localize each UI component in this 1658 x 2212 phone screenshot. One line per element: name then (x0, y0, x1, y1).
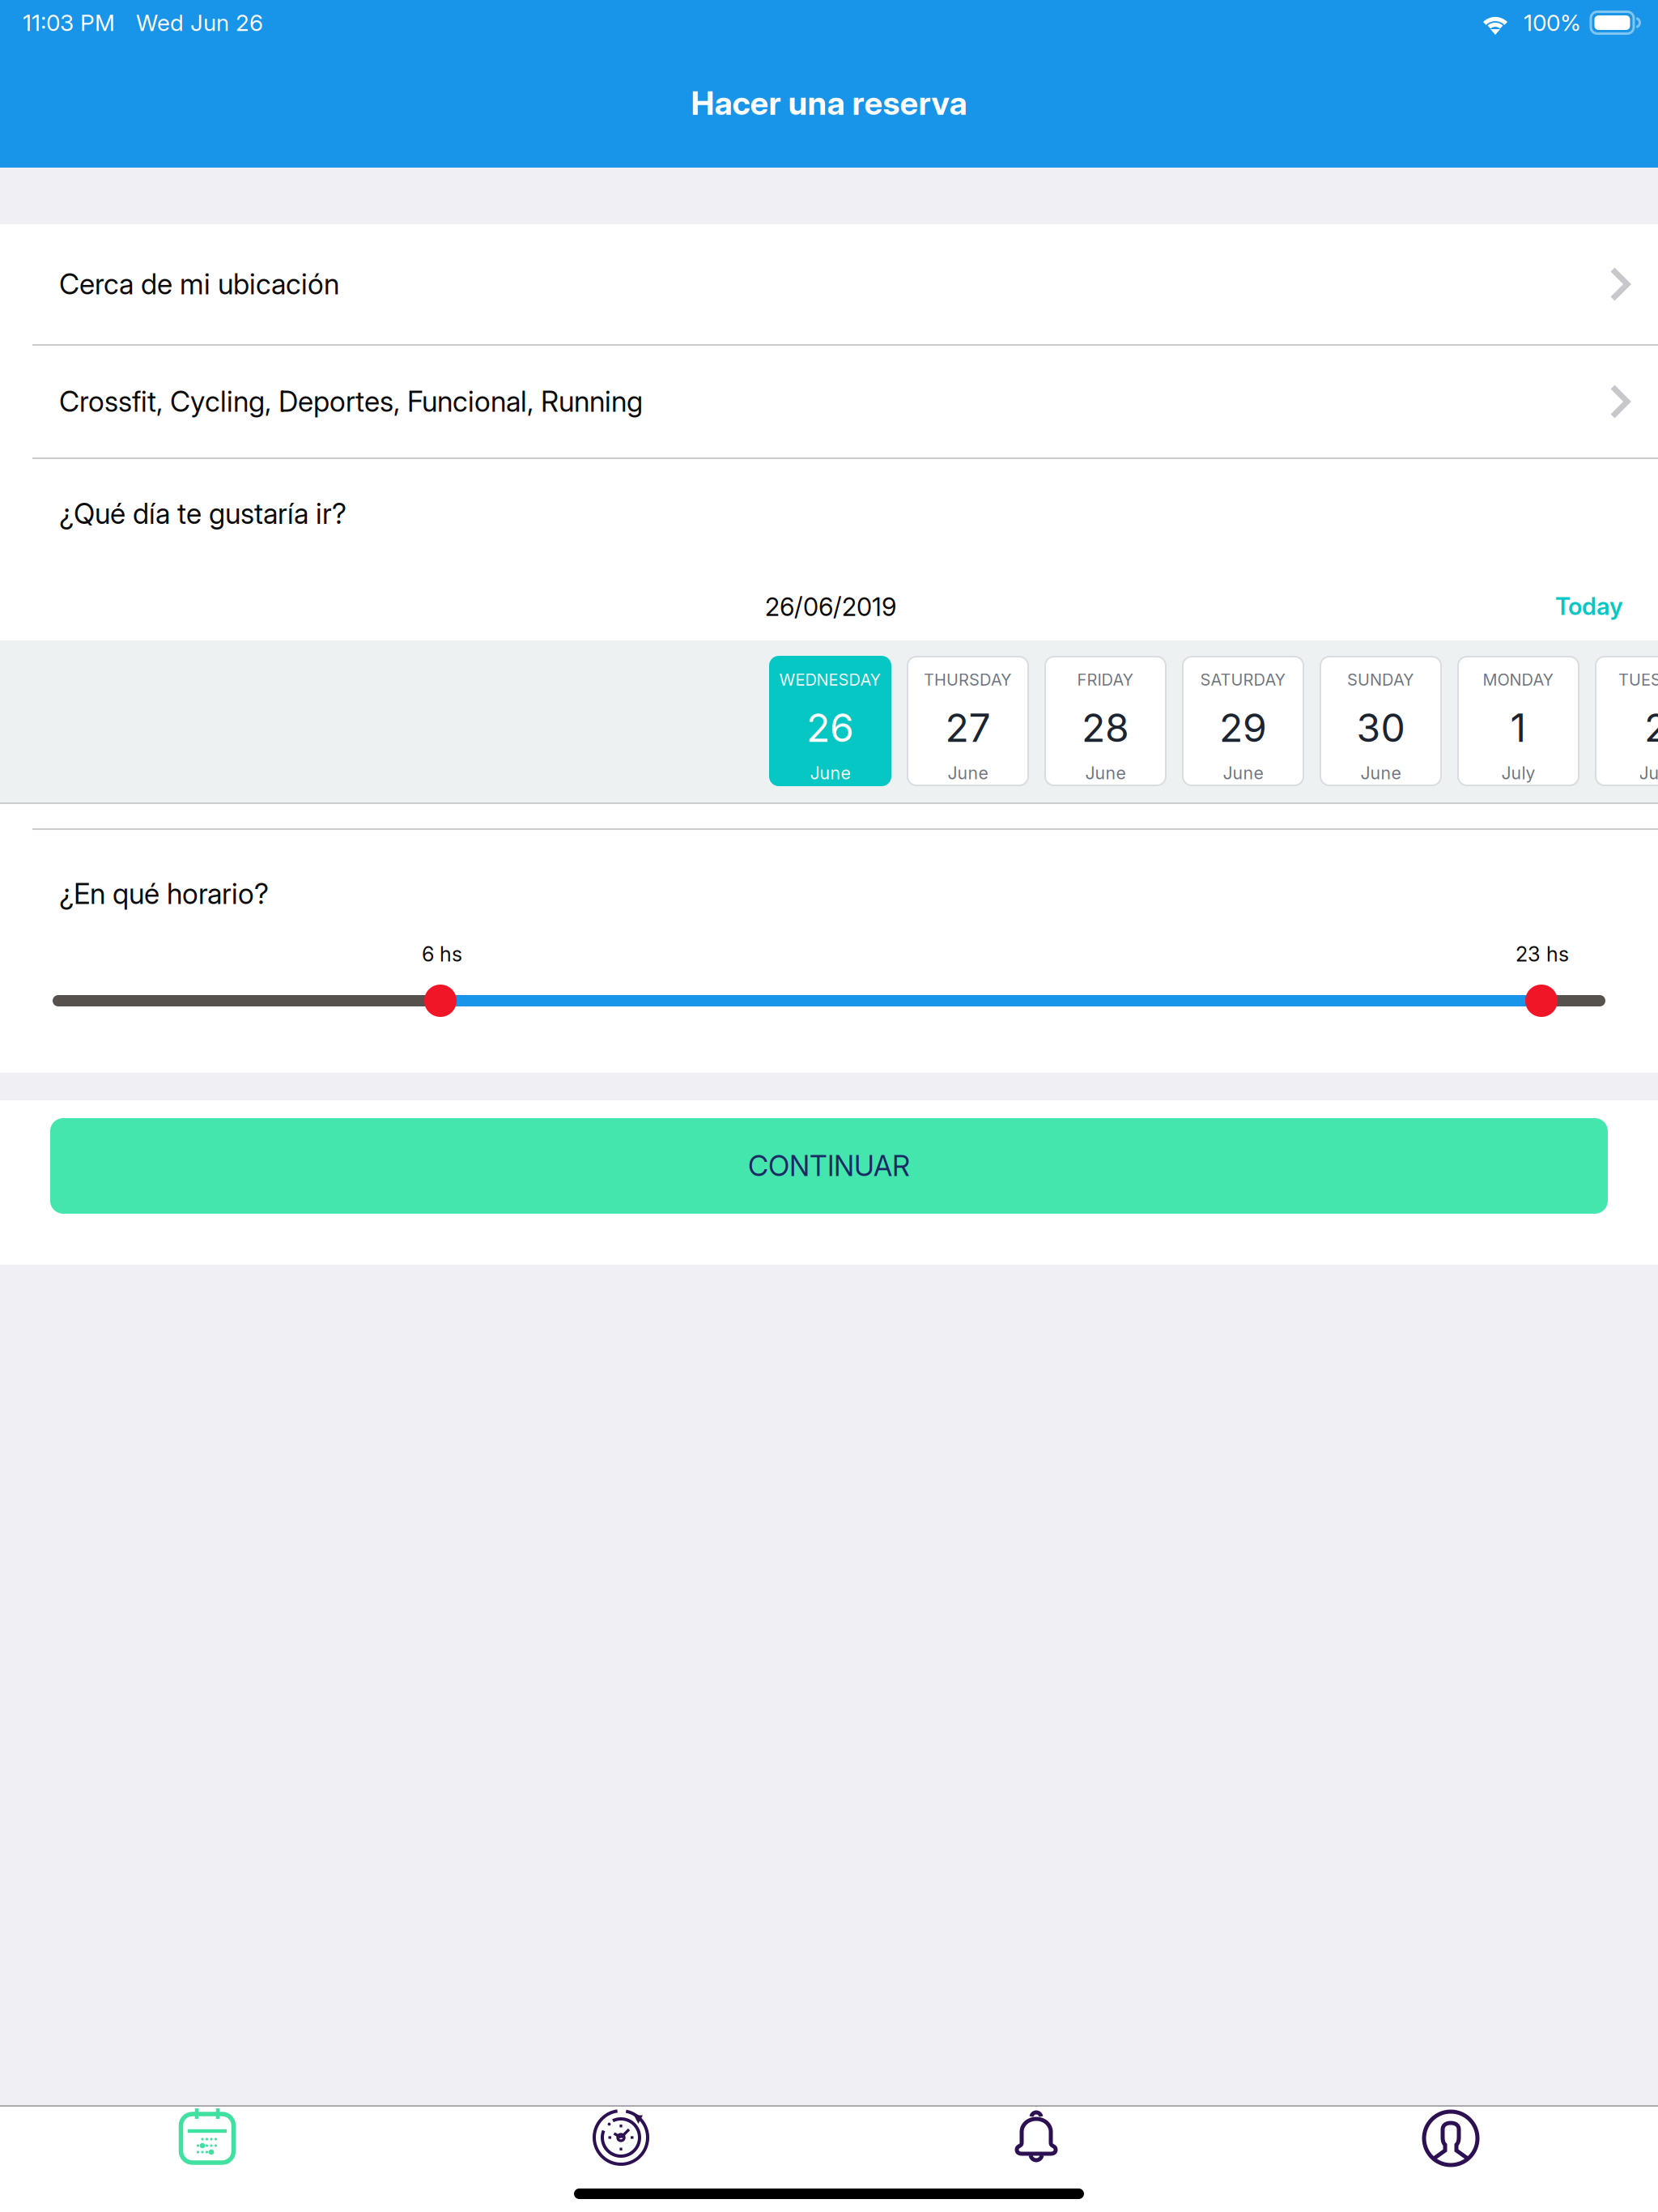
button[interactable]: FRIDAY (1045, 657, 1166, 785)
staticText: 11:03 PM (23, 9, 115, 36)
staticText: Wed Jun 26 (136, 9, 263, 36)
button[interactable]: THURSDAY (908, 657, 1028, 785)
staticText: Today (1555, 592, 1623, 621)
staticText: Crossfit, Cycling, Deportes, Funcional, … (59, 385, 643, 419)
staticText: July (1501, 762, 1535, 783)
button[interactable]: Perfil (1243, 2107, 1658, 2175)
button[interactable]: SATURDAY (1183, 657, 1303, 785)
button[interactable]: Historial (414, 2107, 829, 2175)
staticText: SATURDAY (1200, 670, 1286, 690)
staticText: TUESDAY (1618, 670, 1658, 690)
button[interactable]: Today (1555, 592, 1623, 621)
staticText: 26 (806, 704, 854, 751)
staticText: CONTINUAR (748, 1149, 910, 1183)
button[interactable]: TUESDAY (1596, 657, 1658, 785)
staticText: THURSDAY (924, 670, 1012, 690)
button[interactable]: CONTINUAR (50, 1118, 1608, 1214)
button[interactable]: Cerca de mi ubicación (0, 224, 1658, 344)
staticText: Cerca de mi ubicación (59, 267, 339, 301)
staticText: 30 (1356, 704, 1405, 751)
staticText: 23 hs (1516, 942, 1569, 966)
staticText: June (948, 762, 988, 783)
staticText: June (1360, 762, 1401, 783)
staticText: 28 (1082, 704, 1129, 751)
button[interactable]: SUNDAY (1320, 657, 1441, 785)
staticText: FRIDAY (1077, 670, 1134, 690)
button[interactable]: WEDNESDAY (770, 657, 891, 785)
button[interactable]: MONDAY (1458, 657, 1579, 785)
button[interactable]: Notificaciones (829, 2107, 1243, 2175)
staticText: July (1639, 762, 1658, 783)
staticText: June (1085, 762, 1126, 783)
staticText: MONDAY (1483, 670, 1554, 690)
button[interactable]: Reservar (0, 2107, 414, 2175)
staticText: 100% (1524, 9, 1581, 36)
staticText: 1 (1510, 704, 1526, 751)
staticText: June (810, 762, 850, 783)
staticText: WEDNESDAY (779, 670, 881, 690)
staticText: 6 hs (422, 942, 462, 966)
staticText: SUNDAY (1347, 670, 1414, 690)
button[interactable]: Crossfit, Cycling, Deportes, Funcional, … (0, 346, 1658, 457)
staticText: 2 (1644, 704, 1658, 751)
staticText: June (1223, 762, 1263, 783)
staticText: ¿En qué horario? (59, 877, 269, 911)
staticText: ¿Qué día te gustaría ir? (59, 497, 346, 531)
staticText: 26/06/2019 (765, 592, 896, 622)
staticText: 27 (945, 704, 991, 751)
staticText: Hacer una reserva (691, 83, 967, 123)
staticText: 29 (1219, 704, 1267, 751)
